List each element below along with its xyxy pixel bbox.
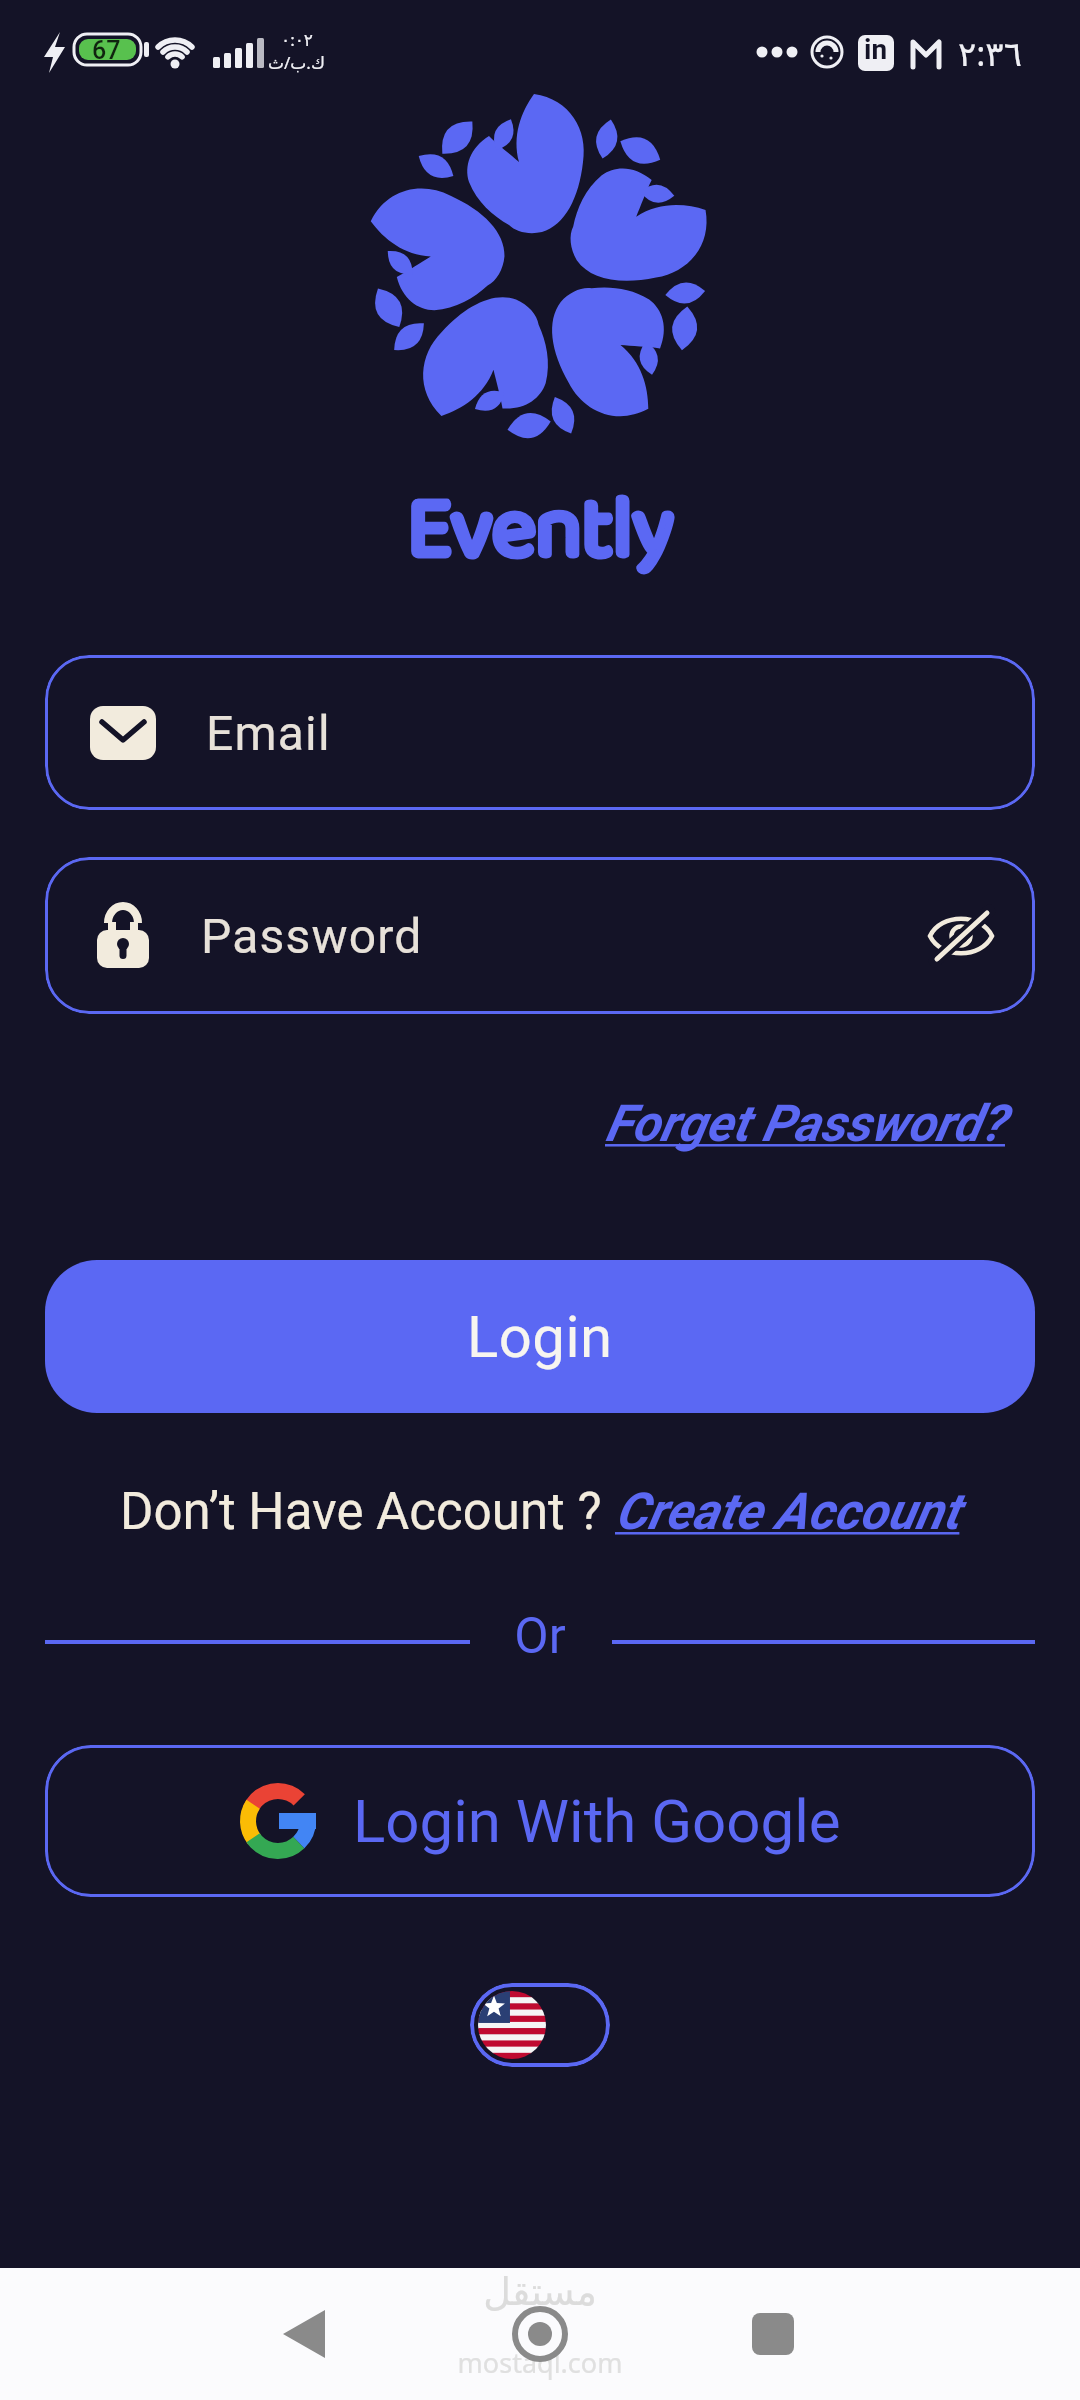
button[interactable]: Forget Password?: [605, 1094, 1005, 1154]
button[interactable]: [738, 2298, 808, 2370]
staticText: mostaql.com: [0, 2344, 1080, 2381]
staticText: 67: [92, 36, 121, 65]
button[interactable]: Email: [45, 655, 1035, 810]
staticText: Email: [206, 705, 331, 761]
staticText: Don’t Have Account ?: [120, 1482, 615, 1542]
button[interactable]: [470, 1983, 610, 2067]
staticText: ٢:٣٦: [958, 30, 1022, 76]
staticText: Evently: [0, 462, 1080, 600]
staticText: in: [864, 33, 888, 66]
button[interactable]: Login: [45, 1260, 1035, 1413]
staticText: مستقل: [0, 2270, 1080, 2314]
button[interactable]: [270, 2298, 340, 2370]
button[interactable]: Login With Google: [45, 1745, 1035, 1897]
staticText: Login: [467, 1303, 613, 1371]
staticText: Evently: [0, 462, 1080, 600]
staticText: ٠:٠٢: [281, 28, 313, 51]
staticText: Password: [201, 908, 423, 964]
button[interactable]: Password: [45, 857, 1035, 1014]
staticText: Login With Google: [353, 1786, 841, 1856]
staticText: Or: [0, 1607, 1080, 1666]
staticText: ك.ب/ث: [268, 51, 325, 74]
button[interactable]: [505, 2298, 575, 2370]
button[interactable]: Create Account: [615, 1482, 960, 1542]
